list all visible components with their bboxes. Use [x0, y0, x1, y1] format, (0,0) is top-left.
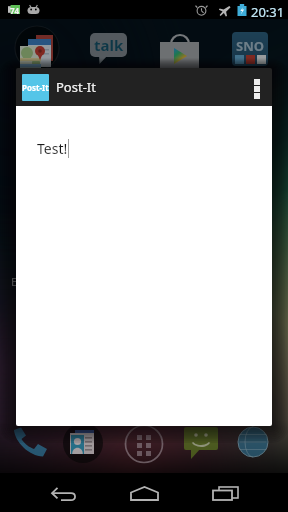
staticText: Test! [37, 139, 68, 158]
button[interactable]: Maps folder [14, 25, 60, 71]
button[interactable]: Phone [12, 427, 52, 457]
button[interactable]: Play Store [159, 34, 200, 68]
staticText: 74 [10, 5, 20, 14]
staticText: E [11, 274, 18, 289]
button[interactable]: Test! [16, 106, 272, 426]
button[interactable]: All apps [124, 424, 164, 464]
button[interactable]: People [62, 422, 104, 464]
staticText: 20:31 [251, 3, 285, 21]
staticText: SNO [236, 37, 265, 55]
button[interactable]: Back [34, 475, 94, 512]
button[interactable]: Messaging [184, 427, 218, 459]
button[interactable]: Recent apps [195, 475, 255, 512]
staticText: Post-It [22, 82, 49, 93]
button[interactable]: More options [241, 68, 272, 106]
button[interactable]: Browser [237, 426, 269, 458]
button[interactable]: SNO View widget [232, 32, 268, 66]
button[interactable]: Home [114, 475, 174, 512]
staticText: Post-It [56, 78, 96, 96]
staticText: talk [94, 35, 124, 55]
button[interactable]: Talk [90, 33, 127, 64]
